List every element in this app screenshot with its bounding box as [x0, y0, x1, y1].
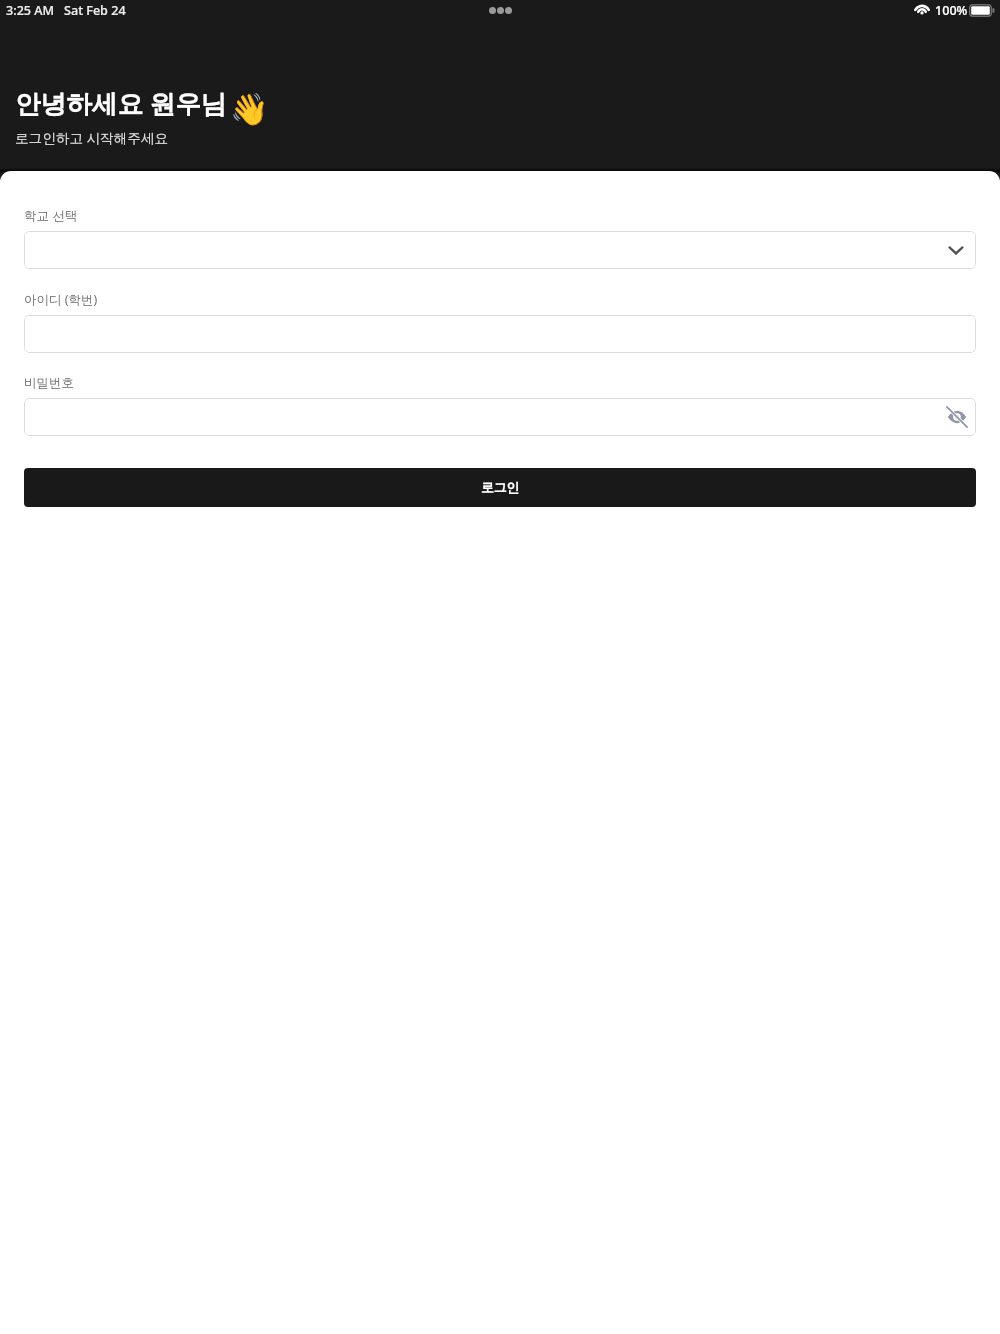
- staticText: Sat Feb 24: [64, 2, 126, 19]
- staticText: 안녕하세요 원우님: [15, 86, 227, 121]
- staticText: 아이디 (학번): [24, 291, 98, 308]
- staticText: 로그인하고 시작해주세요: [15, 128, 169, 147]
- staticText: 로그인: [481, 480, 520, 496]
- button[interactable]: Open school dropdown: [945, 239, 967, 261]
- button[interactable]: Show password: [946, 406, 968, 428]
- button[interactable]: 로그인: [24, 468, 976, 507]
- staticText: 👋: [230, 91, 269, 127]
- button[interactable]: Show password: [24, 398, 976, 436]
- staticText: 학교 선택: [24, 207, 78, 224]
- staticText: 비밀번호: [24, 375, 74, 391]
- button[interactable]: Open school dropdown: [24, 231, 976, 269]
- staticText: 3:25 AM: [6, 2, 55, 19]
- staticText: 100%: [935, 2, 968, 19]
- button[interactable]: [24, 315, 976, 353]
